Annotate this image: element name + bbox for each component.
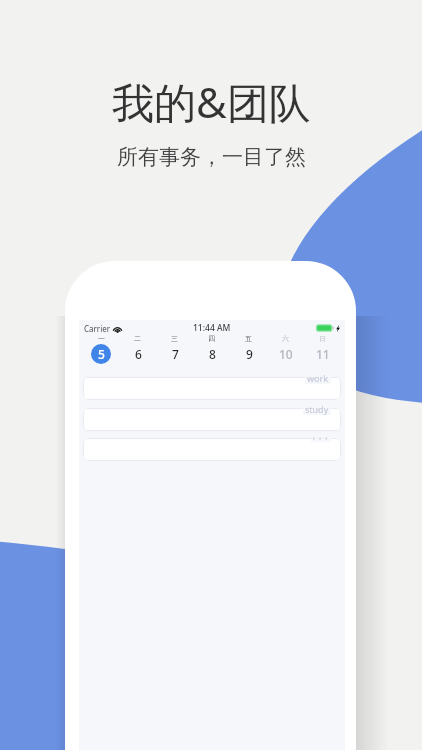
button[interactable]: 五 — [230, 334, 267, 364]
button[interactable] — [83, 377, 341, 400]
button[interactable]: 四 — [193, 334, 230, 364]
staticText: 7 — [172, 346, 179, 362]
staticText: 我的&团队 — [112, 73, 311, 130]
staticText: 三 — [171, 334, 178, 343]
staticText: 6 — [135, 346, 142, 362]
staticText: 六 — [282, 334, 289, 343]
button[interactable]: 日 — [304, 334, 341, 364]
staticText: 11 — [316, 346, 330, 362]
staticText: 8 — [209, 346, 216, 362]
button[interactable]: 二 — [119, 334, 156, 364]
button[interactable]: 一 — [83, 334, 119, 364]
button[interactable]: 三 — [156, 334, 193, 364]
staticText: 11:44 AM — [193, 322, 231, 334]
staticText: 五 — [245, 334, 252, 343]
staticText: 10 — [279, 346, 293, 362]
staticText: 日 — [319, 334, 326, 343]
button[interactable] — [83, 408, 341, 431]
staticText: 9 — [246, 346, 253, 362]
staticText: 二 — [134, 334, 141, 343]
staticText: 一 — [98, 334, 105, 343]
button[interactable]: 六 — [267, 334, 304, 364]
staticText: work — [307, 372, 329, 384]
staticText: study — [305, 403, 329, 415]
staticText: 5 — [98, 346, 105, 362]
button[interactable] — [83, 438, 341, 461]
staticText: Carrier — [84, 323, 111, 334]
staticText: 所有事务，一目了然 — [117, 144, 306, 170]
staticText: 四 — [208, 334, 215, 343]
